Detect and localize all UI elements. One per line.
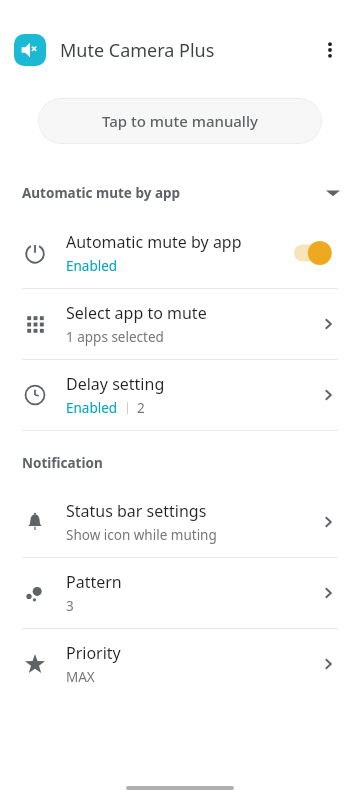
button[interactable]: Status bar settings [0,487,360,557]
staticText: Status bar settings [66,500,207,522]
staticText: Show icon while muting [66,526,217,544]
button[interactable]: Priority [0,629,360,699]
staticText: Enabled [66,257,118,275]
button[interactable]: Delay setting [0,360,360,430]
other: Open [316,652,340,676]
staticText: MAX [66,668,95,686]
staticText: 3 [66,597,74,615]
other: Open [316,312,340,336]
other: Open [316,510,340,534]
staticText: Notification [22,454,103,472]
button[interactable]: Automatic mute by app toggle [294,240,340,266]
staticText: Enabled [66,399,118,417]
staticText: Pattern [66,571,122,593]
button[interactable]: Automatic mute by app [0,181,360,205]
button[interactable]: More options [308,28,352,72]
button[interactable]: Tap to mute manually [38,98,322,144]
staticText: 1 apps selected [66,328,164,346]
staticText: Delay setting [66,373,165,395]
button[interactable]: Automatic mute by app [0,218,360,288]
staticText: 2 [137,399,145,417]
other: Open [316,581,340,605]
staticText: Tap to mute manually [102,111,258,131]
staticText: Select app to mute [66,302,207,324]
button[interactable]: Pattern [0,558,360,628]
staticText: Mute Camera Plus [60,38,215,63]
staticText: Automatic mute by app [22,184,181,202]
staticText: Automatic mute by app [66,231,242,253]
button[interactable]: Select app to mute [0,289,360,359]
other: Open [316,383,340,407]
staticText: Priority [66,642,121,664]
